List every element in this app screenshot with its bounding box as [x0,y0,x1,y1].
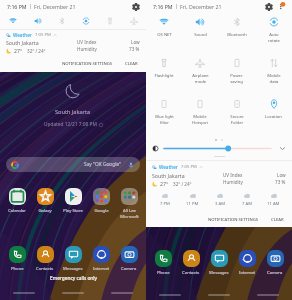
button[interactable]: Bluetooth [50,13,74,29]
button[interactable]: Home [194,290,243,300]
staticText: Camera [267,270,283,276]
button[interactable]: CLEAR [122,59,141,69]
button[interactable]: Google [87,188,115,214]
staticText: CLEAR [271,217,284,223]
staticText: OS NET [157,32,172,38]
button[interactable]: All Lee Microsoft [115,188,143,219]
staticText: Fri, December 21 [180,3,222,10]
button[interactable]: NOTIFICATION SETTINGS [205,215,262,225]
staticText: Galaxy [38,208,52,214]
staticText: Power saving [230,73,243,84]
button[interactable]: CLEAR [268,215,287,225]
button[interactable]: Contacts [177,250,205,276]
staticText: Sound [194,32,207,38]
button[interactable]: Recents [0,288,48,298]
staticText: UV Index [223,172,243,178]
staticText: Low [131,39,140,45]
staticText: 7:16 PM [153,3,173,10]
staticText: Calendar [8,208,26,214]
staticText: Say "OK Google" [84,161,122,168]
staticText: 27° [14,47,23,54]
staticText: Phone [11,266,24,272]
button[interactable]: Recents [146,290,194,300]
button[interactable]: Mobile data [255,54,292,95]
button[interactable]: More options [275,0,288,13]
button[interactable]: Sound [25,13,50,29]
staticText: Contacts [182,270,200,276]
staticText: 27° [160,180,169,187]
staticText: 7:05 PM [181,164,197,170]
button[interactable]: Flashlight [146,54,182,95]
staticText: UV Index [77,39,97,45]
button[interactable]: Mobile hotspot [182,95,218,136]
staticText: South Jakarta [55,108,91,116]
staticText: Phone [157,270,170,276]
staticText: Secure Folder [230,114,244,125]
staticText: Bluetooth [227,32,247,38]
button[interactable]: Back [97,288,146,298]
staticText: South Jakarta [152,172,185,179]
staticText: 32° / 24° [173,181,192,187]
button[interactable]: Galaxy [31,188,59,214]
staticText: Low [277,172,286,178]
staticText: NOTIFICATION SETTINGS [62,61,113,67]
button[interactable]: Wi-Fi [0,13,25,29]
staticText: Humidity [77,46,97,52]
button[interactable]: Settings [262,0,275,13]
staticText: Weather [159,164,178,170]
button[interactable]: NOTIFICATION SETTINGS [59,59,116,69]
button[interactable]: Home [48,288,97,298]
button[interactable]: Sound [182,13,218,54]
staticText: Messages [63,266,83,272]
button[interactable]: Camera [115,246,143,272]
staticText: 73 % [275,179,286,185]
staticText: South Jakarta [6,39,39,46]
button[interactable]: Flashlight [98,13,122,29]
button[interactable]: Messages [59,246,87,272]
button[interactable]: Power saving [218,54,255,95]
staticText: NOTIFICATION SETTINGS [208,217,259,223]
staticText: 11 PM [186,201,199,207]
button[interactable]: Location [255,95,292,136]
button[interactable]: Airplane mode [182,54,218,95]
button[interactable]: Phone [3,246,31,272]
button[interactable]: Camera [261,250,289,276]
button[interactable]: Auto rotate [74,13,98,29]
button[interactable]: Secure folder [218,95,255,136]
staticText: Play Store [63,208,83,214]
staticText: Mobile Hotspot [192,114,208,125]
button[interactable]: Settings [129,0,142,13]
staticText: Emergency calls only [50,275,97,282]
button[interactable]: Say "OK Google" [6,157,140,172]
button[interactable]: Expand [277,143,288,153]
staticText: Airplane mode [192,73,209,84]
staticText: Internet [93,266,110,272]
button[interactable]: Messages [205,250,233,276]
staticText: Internet [239,270,256,276]
staticText: 3 AM [215,201,225,207]
staticText: Blue light filter [155,114,174,125]
button[interactable]: Airplane mode [122,13,146,29]
button[interactable]: Auto rotate [255,13,292,54]
button[interactable]: Play Store [59,188,87,214]
staticText: Messages [209,270,229,276]
button[interactable]: Phone [149,250,177,276]
button[interactable]: Contacts [31,246,59,272]
button[interactable]: Internet [233,250,261,276]
button[interactable]: Internet [87,246,115,272]
staticText: Updated 12/21 7:08 PM [44,121,97,128]
staticText: All Lee Microsoft [120,208,139,219]
staticText: 11 AM [267,201,280,207]
staticText: Weather [13,32,32,38]
button[interactable]: Blue light filter [146,95,182,136]
staticText: Location [265,114,282,120]
button[interactable]: Bluetooth [218,13,255,54]
staticText: 7:16 PM [7,3,27,10]
staticText: 7 AM [242,201,252,207]
staticText: 32° / 24° [27,48,46,54]
button[interactable]: Wi-Fi [146,13,182,54]
button[interactable]: Back [243,290,292,300]
button[interactable]: Calendar [3,188,31,214]
staticText: Flashlight [154,73,174,79]
staticText: 7 PM [160,201,170,207]
